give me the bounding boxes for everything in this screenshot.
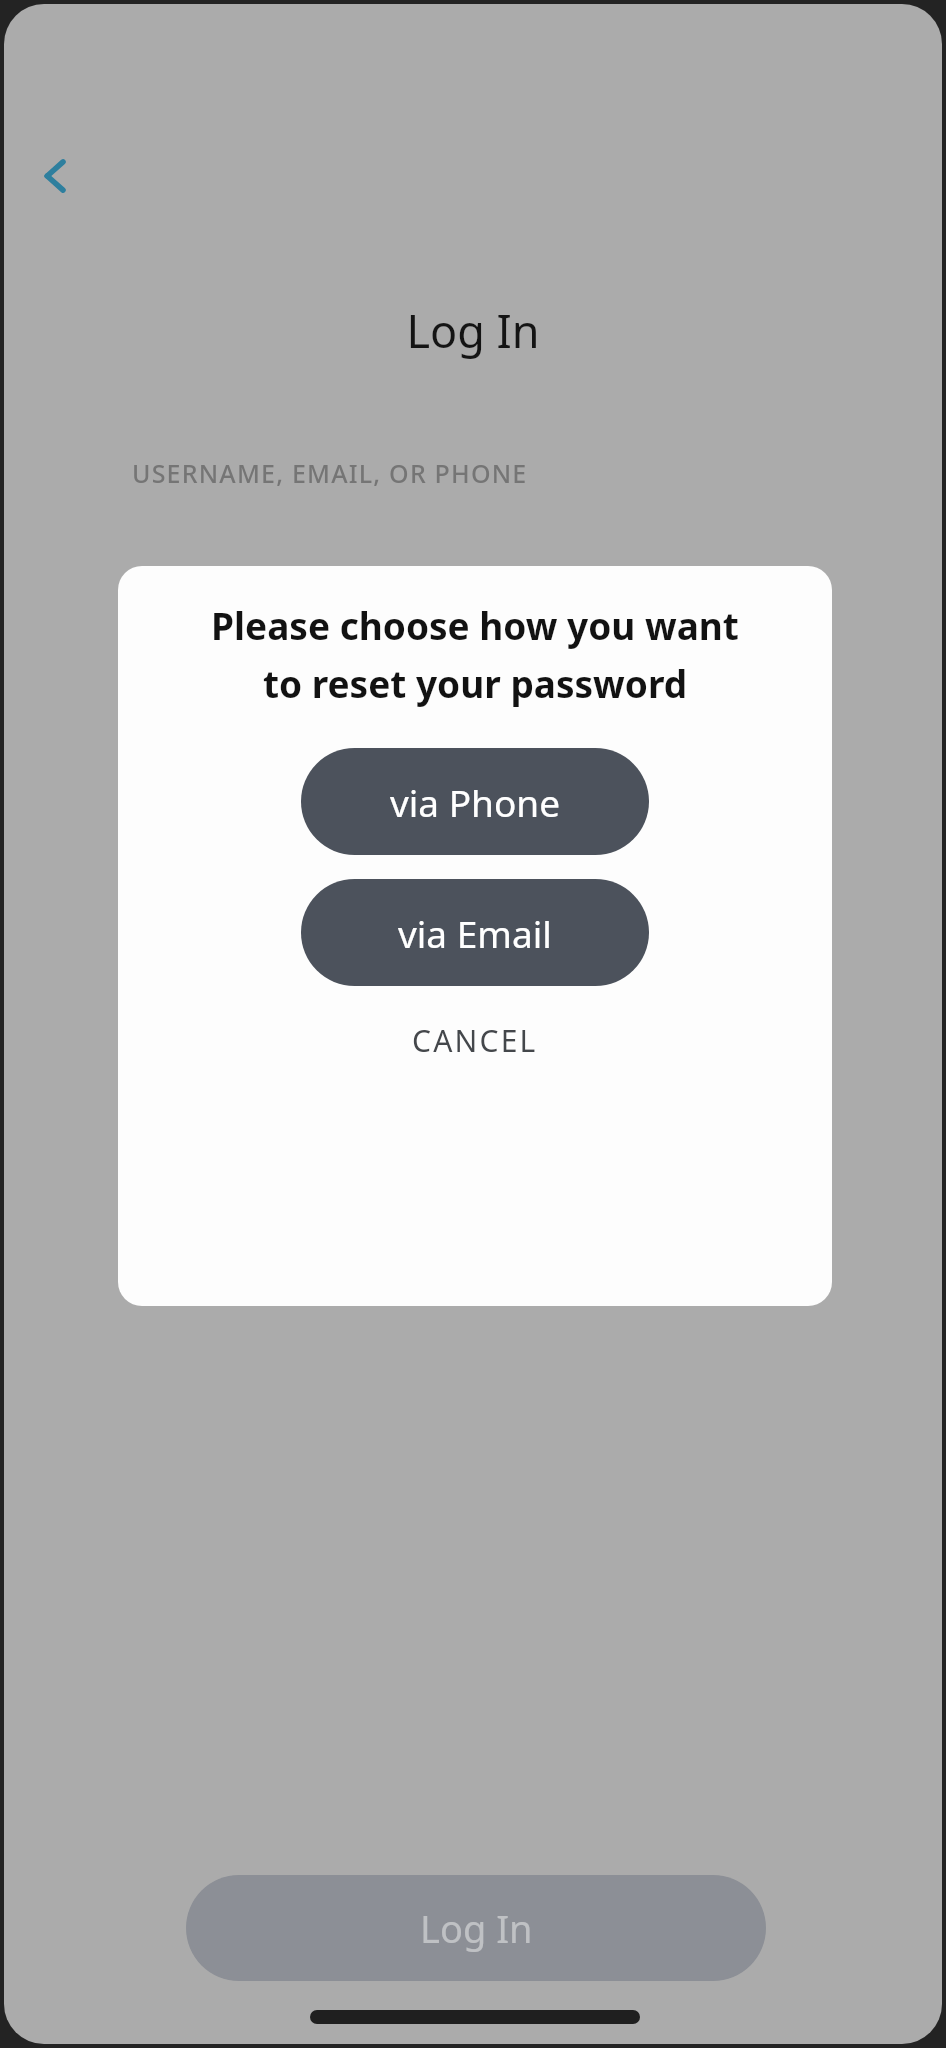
button[interactable]: Log In [186, 1875, 766, 1981]
staticText: Please choose how you want to reset your… [211, 600, 739, 708]
button[interactable]: via Phone [301, 748, 649, 855]
staticText: Log In [420, 1902, 533, 1954]
staticText: USERNAME, EMAIL, OR PHONE [132, 456, 528, 490]
staticText: CANCEL [412, 1020, 538, 1061]
button[interactable]: Back [14, 134, 98, 218]
staticText: Log In [406, 300, 540, 361]
button[interactable]: Show password [756, 652, 836, 732]
button[interactable]: via Email [301, 879, 649, 986]
button[interactable]: CANCEL [295, 1000, 655, 1080]
staticText: via Phone [390, 777, 561, 827]
staticText: via Email [398, 908, 552, 958]
